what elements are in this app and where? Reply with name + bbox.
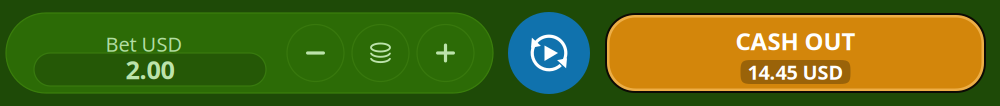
button[interactable]: Increase bet [417,24,474,81]
button[interactable]: Bet presets [352,24,409,81]
button[interactable]: Bet USD [22,13,266,93]
button[interactable]: CASH OUT [605,13,986,93]
staticText: Bet USD [105,31,182,57]
staticText: 14.45 USD [747,59,843,85]
button[interactable]: Auto bet [508,12,590,94]
button[interactable]: Decrease bet [287,24,344,81]
staticText: CASH OUT [735,25,855,57]
staticText: 2.00 [125,53,174,86]
